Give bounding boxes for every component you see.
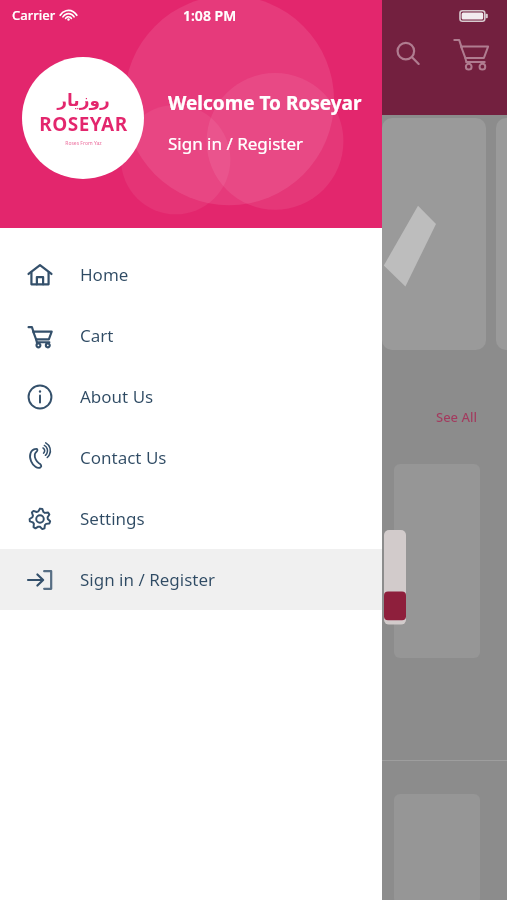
staticText: About Us bbox=[80, 385, 154, 408]
staticText: Carrier bbox=[12, 6, 56, 24]
button[interactable]: About Us bbox=[0, 366, 382, 427]
button[interactable]: Home bbox=[0, 244, 382, 305]
staticText: Contact Us bbox=[80, 446, 167, 469]
staticText: Settings bbox=[80, 507, 145, 530]
staticText: Sign in / Register bbox=[80, 568, 216, 591]
button[interactable]: Contact Us bbox=[0, 427, 382, 488]
button[interactable]: Search bbox=[390, 36, 426, 72]
button[interactable]: Sign in / Register bbox=[0, 549, 382, 610]
button[interactable]: Settings bbox=[0, 488, 382, 549]
button[interactable]: Cart bbox=[0, 305, 382, 366]
staticText: 1:08 PM bbox=[183, 6, 237, 25]
staticText: Cart bbox=[80, 324, 114, 347]
staticText: Home bbox=[80, 263, 129, 286]
button[interactable]: See All bbox=[436, 408, 477, 426]
staticText: Welcome To Roseyar bbox=[168, 90, 362, 116]
button[interactable]: Sign in / Register bbox=[168, 132, 304, 155]
staticText: روزیار bbox=[57, 90, 110, 110]
staticText: See All bbox=[436, 408, 477, 426]
staticText: ROSEYAR bbox=[39, 111, 128, 137]
staticText: Sign in / Register bbox=[168, 132, 304, 155]
button[interactable]: Cart bbox=[452, 34, 490, 72]
staticText: Roses From Yaz bbox=[65, 140, 102, 147]
